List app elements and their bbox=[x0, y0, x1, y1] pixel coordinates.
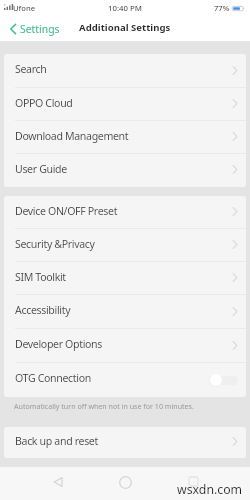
staticText: OPPO Cloud bbox=[15, 96, 73, 110]
button[interactable]: Device ON/OFF Preset bbox=[4, 196, 246, 229]
staticText: 77% bbox=[214, 3, 230, 13]
staticText: 10:40 PM bbox=[108, 3, 142, 14]
staticText: Download Management bbox=[15, 129, 129, 143]
button[interactable]: Home bbox=[114, 471, 136, 493]
button[interactable]: Back up and reset bbox=[4, 427, 246, 458]
button[interactable]: SIM Toolkit bbox=[4, 262, 246, 295]
button[interactable]: OTG Connection bbox=[4, 363, 246, 397]
staticText: OTG Connection bbox=[15, 371, 91, 385]
button[interactable]: Recents bbox=[182, 470, 204, 492]
staticText: Security &Privacy bbox=[15, 237, 95, 251]
staticText: SIM Toolkit bbox=[15, 270, 66, 284]
staticText: Device ON/OFF Preset bbox=[15, 204, 118, 218]
button[interactable]: Settings bbox=[0, 19, 68, 39]
staticText: Settings bbox=[20, 22, 60, 36]
staticText: Automatically turn off when not in use f… bbox=[14, 401, 194, 411]
staticText: Ufone bbox=[13, 3, 36, 13]
button[interactable]: User Guide bbox=[4, 154, 246, 187]
staticText: Developer Options bbox=[15, 337, 103, 351]
button[interactable]: OPPO Cloud bbox=[4, 88, 246, 121]
button[interactable]: Accessibility bbox=[4, 295, 246, 329]
staticText: Back up and reset bbox=[15, 434, 98, 448]
staticText: wsxdn.com bbox=[177, 481, 243, 498]
button[interactable]: Download Management bbox=[4, 121, 246, 154]
staticText: Additional Settings bbox=[79, 21, 171, 34]
button[interactable]: Search bbox=[4, 54, 246, 88]
staticText: Search bbox=[15, 62, 47, 76]
button[interactable]: Developer Options bbox=[4, 329, 246, 363]
button[interactable]: Back bbox=[47, 471, 69, 493]
staticText: User Guide bbox=[15, 162, 67, 176]
staticText: Accessibility bbox=[15, 303, 71, 317]
button[interactable]: Security &Privacy bbox=[4, 229, 246, 262]
